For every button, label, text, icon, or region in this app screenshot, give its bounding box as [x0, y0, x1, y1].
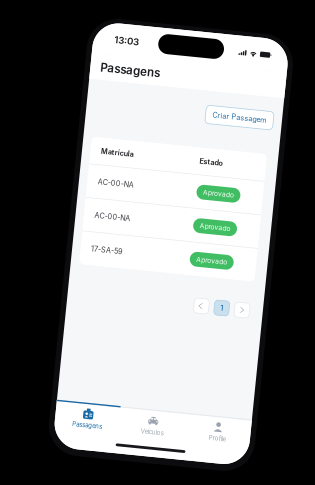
- staticText: Criar Passagem: [126, 77, 180, 86]
- button[interactable]: Criar Passagem: [119, 72, 187, 91]
- button[interactable]: 1: [147, 265, 162, 280]
- button[interactable]: Previous page: [127, 265, 142, 280]
- button[interactable]: Veículos: [65, 382, 131, 411]
- staticText: Veículos: [86, 400, 109, 407]
- staticText: Aprovado: [125, 155, 156, 164]
- button[interactable]: Passagens: [0, 382, 65, 411]
- staticText: 1: [153, 268, 156, 277]
- button[interactable]: Next page: [168, 265, 183, 280]
